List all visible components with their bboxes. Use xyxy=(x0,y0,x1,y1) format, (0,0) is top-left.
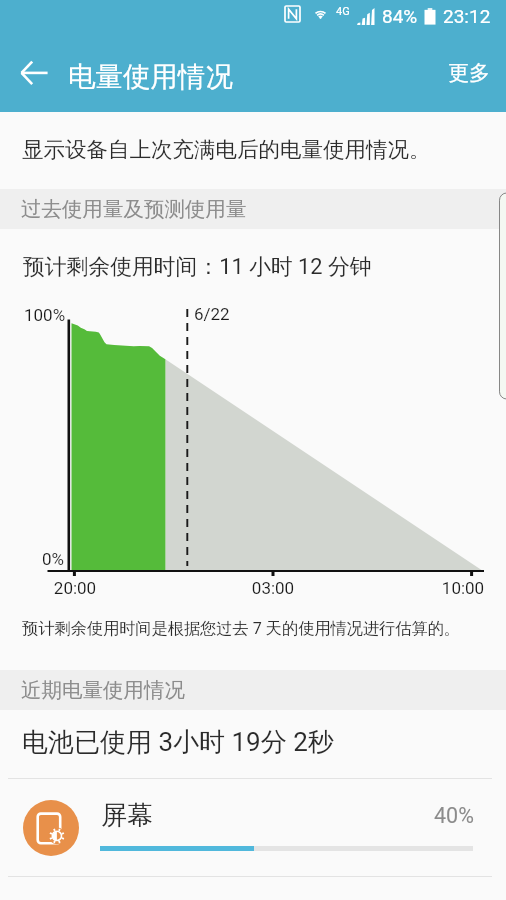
button[interactable]: 屏幕 xyxy=(0,779,506,876)
staticText: 84% xyxy=(382,5,418,27)
staticText: 显示设备自上次充满电后的电量使用情况。 xyxy=(22,136,431,163)
button[interactable]: Back xyxy=(12,50,58,96)
staticText: 6/22 xyxy=(194,304,230,324)
staticText: 0% xyxy=(42,549,65,569)
staticText: 近期电量使用情况 xyxy=(21,677,185,703)
staticText: 电池已使用 3小时 19分 2秒 xyxy=(22,726,334,759)
staticText: 20:00 xyxy=(35,578,115,598)
staticText: 过去使用量及预测使用量 xyxy=(21,196,247,222)
staticText: 23:12 xyxy=(443,5,491,27)
staticText: 更多 xyxy=(448,60,490,86)
staticText: 电量使用情况 xyxy=(68,60,233,95)
staticText: 10:00 xyxy=(423,578,503,598)
staticText: 03:00 xyxy=(233,578,313,598)
button[interactable]: 更多 xyxy=(448,60,490,86)
staticText: 40% xyxy=(434,803,474,828)
staticText: 预计剩余使用时间：11 小时 12 分钟 xyxy=(23,253,372,280)
staticText: 100% xyxy=(24,305,66,325)
staticText: 预计剩余使用时间是根据您过去 7 天的使用情况进行估算的。 xyxy=(22,618,461,638)
staticText: 屏幕 xyxy=(101,799,153,832)
staticText: 4G xyxy=(336,5,350,18)
